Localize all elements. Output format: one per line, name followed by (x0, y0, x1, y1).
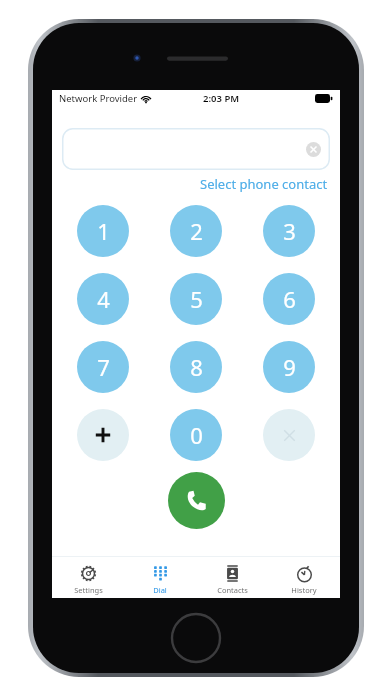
staticText: History (291, 585, 317, 595)
button[interactable]: 7 (77, 341, 129, 393)
button[interactable]: Clear (62, 128, 330, 170)
button[interactable]: Dial (124, 560, 196, 595)
button[interactable]: Call (168, 472, 225, 529)
button[interactable]: 1 (77, 205, 129, 257)
staticText: 2 (190, 216, 203, 246)
staticText: 0 (190, 420, 203, 450)
button[interactable]: Plus (77, 409, 129, 461)
staticText: 2:03 PM (203, 92, 240, 105)
button[interactable]: Clear (306, 142, 321, 157)
staticText: 6 (283, 284, 296, 314)
staticText: Select phone contact (200, 175, 328, 193)
button[interactable]: 3 (263, 205, 315, 257)
button[interactable]: History (268, 560, 340, 595)
button[interactable]: Contacts (196, 560, 268, 595)
button[interactable]: Select phone contact (200, 174, 328, 194)
button[interactable]: 4 (77, 273, 129, 325)
staticText: 3 (283, 216, 296, 246)
button[interactable]: 9 (263, 341, 315, 393)
staticText: 5 (190, 284, 203, 314)
staticText: Network Provider (59, 92, 138, 105)
button[interactable]: 6 (263, 273, 315, 325)
staticText: 4 (97, 284, 110, 314)
button[interactable]: 2 (170, 205, 222, 257)
staticText: Dial (153, 585, 167, 595)
staticText: Contacts (217, 585, 248, 595)
staticText: 9 (283, 352, 296, 382)
staticText: 7 (97, 352, 110, 382)
button[interactable]: Settings (52, 560, 124, 595)
staticText: 1 (97, 216, 110, 246)
button[interactable]: 8 (170, 341, 222, 393)
button[interactable]: Delete (263, 409, 315, 461)
staticText: Settings (74, 585, 103, 595)
button[interactable]: 0 (170, 409, 222, 461)
button[interactable]: 5 (170, 273, 222, 325)
staticText: 8 (190, 352, 203, 382)
